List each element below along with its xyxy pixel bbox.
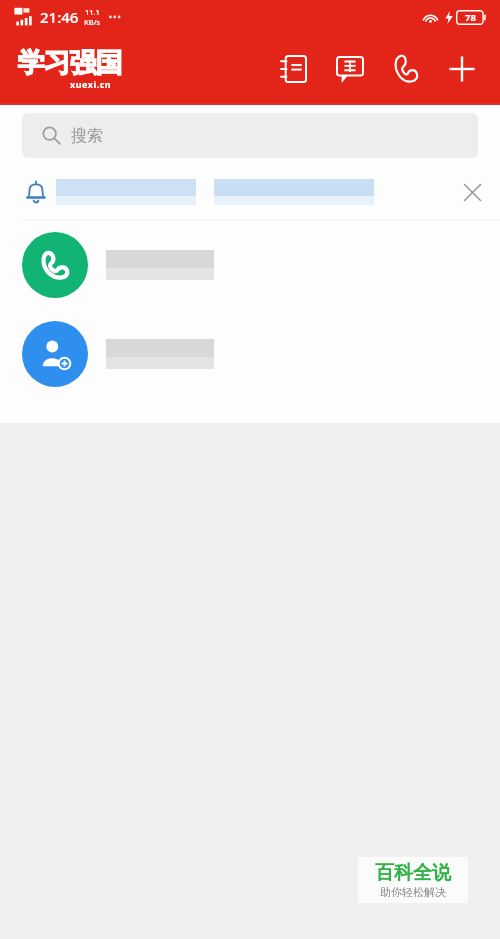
button[interactable] (0, 220, 500, 309)
button[interactable]: Close (450, 170, 494, 214)
staticText: 21:46 (40, 7, 79, 27)
button[interactable]: Add (434, 41, 490, 97)
staticText: 11.1 (85, 7, 100, 17)
button[interactable] (0, 309, 500, 398)
button[interactable]: Close (0, 165, 500, 219)
button[interactable]: Messages (322, 41, 378, 97)
staticText: xuexi.cn (70, 78, 112, 90)
button[interactable]: Call (378, 41, 434, 97)
staticText: 百科全说 (375, 861, 451, 885)
staticText: 78 (465, 11, 476, 24)
button[interactable]: Contacts (266, 41, 322, 97)
staticText: 搜索 (71, 126, 103, 146)
staticText: 学习强国 (18, 46, 122, 80)
button[interactable]: 搜索 (22, 113, 478, 158)
staticText: 助你轻松解决 (380, 885, 446, 899)
staticText: KB/s (84, 17, 101, 27)
